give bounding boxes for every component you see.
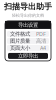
staticText: 页面大小 [10,45,30,51]
staticText: 轻松导出你的文档 [12,13,44,18]
staticText: 立即导出 [18,53,38,59]
staticText: 图片质量 [10,38,30,44]
staticText: 导出设置 [18,22,38,28]
staticText: 扫描导出助手 [4,2,52,11]
staticText: A4 [40,44,46,51]
staticText: 高清 [36,38,46,44]
staticText: 文件格式 [10,31,30,37]
button[interactable]: 立即导出 [5,53,51,59]
staticText: PDF [36,30,46,37]
